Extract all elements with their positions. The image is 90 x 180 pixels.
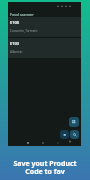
staticText: Alkannin — [10, 50, 23, 54]
button[interactable]: E103 — [8, 38, 81, 58]
button[interactable] — [70, 130, 79, 139]
staticText: Curcumin, Turmeric — [10, 29, 38, 33]
staticText: Save yout Product Code to fav — [0, 159, 90, 176]
staticText: E100 — [10, 20, 20, 25]
button[interactable]: E100 — [8, 17, 81, 37]
staticText: Food scanner — [10, 12, 34, 17]
button[interactable] — [69, 117, 79, 127]
staticText: E103 — [10, 41, 20, 46]
button[interactable] — [60, 130, 69, 139]
